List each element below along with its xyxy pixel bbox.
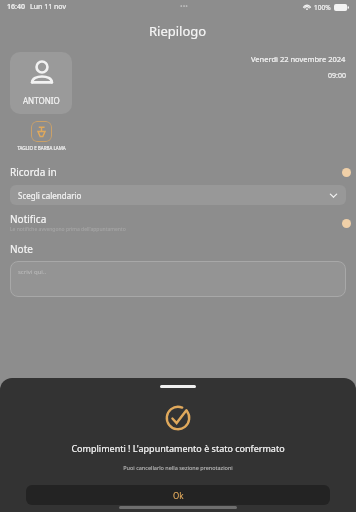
button[interactable]: Toggle	[342, 216, 356, 230]
button[interactable]: Toggle	[342, 165, 356, 179]
staticText: Venerdì 22 novembre 2024	[251, 54, 346, 64]
staticText: Note	[10, 242, 33, 256]
staticText: Ricorda in	[10, 165, 57, 179]
staticText: Puoi cancellarlo nella sezione prenotazi…	[123, 464, 233, 471]
staticText: Complimenti ! L'appuntamento è stato con…	[71, 442, 285, 454]
staticText: Ok	[173, 490, 184, 501]
staticText: TAGLIO E BARBA LAMA	[17, 145, 66, 151]
staticText: Scegli calendario	[18, 190, 82, 201]
staticText: Riepilogo	[149, 22, 207, 40]
button[interactable]: Ok	[26, 485, 330, 505]
button[interactable]: Notifica	[10, 212, 356, 233]
staticText: ANTONIO	[23, 95, 60, 106]
button[interactable]: Scegli calendario	[10, 185, 346, 205]
button[interactable]: TAGLIO E BARBA LAMA	[10, 121, 72, 151]
staticText: 16:40	[7, 2, 25, 12]
staticText: scrivi qui..	[18, 268, 47, 276]
staticText: 09:00	[328, 71, 346, 81]
staticText: Le notifiche avvengono prima dell'appunt…	[10, 226, 126, 233]
staticText: 100%	[314, 3, 331, 12]
staticText: •••	[180, 2, 188, 12]
staticText: Notifica	[10, 212, 47, 226]
button[interactable]: Ricorda in	[10, 165, 356, 179]
button[interactable]: ANTONIO	[10, 52, 72, 114]
button[interactable]: scrivi qui..	[10, 261, 346, 297]
staticText: Lun 11 nov	[30, 2, 66, 12]
